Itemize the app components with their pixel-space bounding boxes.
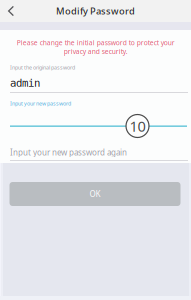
button[interactable]: OK: [9, 182, 180, 206]
staticText: Input your new password again: [10, 147, 127, 158]
staticText: admin: [10, 77, 40, 89]
button[interactable]: Back: [0, 0, 22, 22]
staticText: 10: [129, 116, 145, 136]
staticText: Please change the initial password to pr…: [16, 38, 174, 56]
staticText: Modify Password: [56, 5, 135, 17]
staticText: Input your new password: [10, 100, 71, 107]
staticText: Input the original password: [10, 64, 75, 71]
staticText: OK: [89, 189, 100, 199]
